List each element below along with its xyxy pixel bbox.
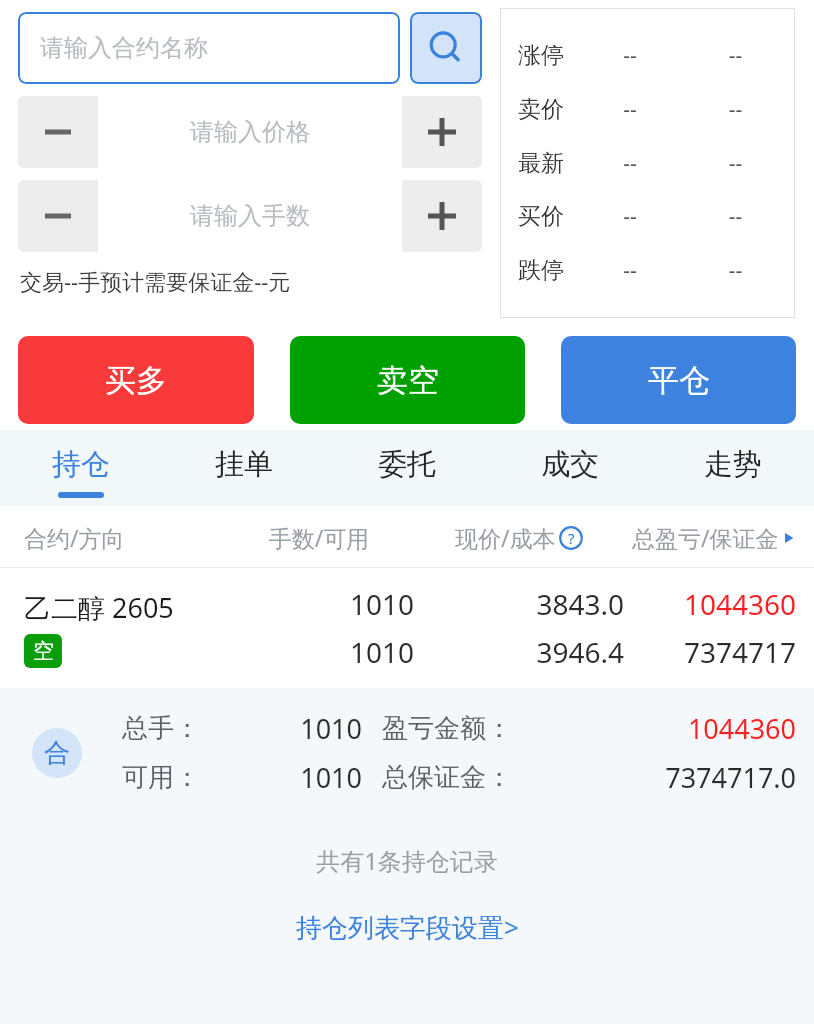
button[interactable]: 请输入手数 <box>98 180 402 252</box>
staticText: -- <box>584 149 676 178</box>
staticText: 7374717.0 <box>512 759 796 796</box>
staticText: 可用： <box>122 761 232 794</box>
staticText: -- <box>676 95 795 124</box>
staticText: 挂单 <box>215 446 273 483</box>
staticText: 买价 <box>518 202 584 231</box>
button[interactable]: 请输入合约名称 <box>18 12 400 84</box>
staticText: 委托 <box>378 446 436 483</box>
button[interactable]: 持仓列表字段设置> <box>276 903 539 951</box>
staticText: -- <box>584 95 676 124</box>
staticText: -- <box>584 256 676 285</box>
button[interactable]: 挂单 <box>162 430 325 506</box>
staticText: 持仓列表字段设置> <box>296 909 519 945</box>
staticText: 平仓 <box>648 361 710 400</box>
button[interactable]: 卖价 <box>500 95 795 124</box>
button[interactable]: 涨停 <box>500 41 795 70</box>
staticText: 盈亏金额： <box>382 712 512 745</box>
staticText: -- <box>676 256 795 285</box>
staticText: 跌停 <box>518 256 584 285</box>
staticText: 空 <box>33 638 54 664</box>
staticText: 1010 <box>232 759 362 796</box>
staticText: 买多 <box>105 361 167 400</box>
staticText: 7374717 <box>624 633 796 671</box>
staticText: -- <box>584 41 676 70</box>
staticText: 请输入合约名称 <box>40 33 208 63</box>
staticText: 卖价 <box>518 95 584 124</box>
staticText: 最新 <box>518 149 584 178</box>
button[interactable]: Help <box>559 526 583 550</box>
staticText: 1010 <box>224 633 414 671</box>
staticText: 涨停 <box>518 41 584 70</box>
staticText: 总盈亏/保证金 <box>632 522 779 553</box>
staticText: 请输入价格 <box>190 117 310 147</box>
staticText: -- <box>676 149 795 178</box>
button[interactable]: Decrease <box>18 96 98 168</box>
staticText: -- <box>676 41 795 70</box>
staticText: 1010 <box>224 585 414 623</box>
staticText: 总手： <box>122 712 232 745</box>
staticText: 现价/成本 <box>455 522 556 553</box>
staticText: 1010 <box>232 710 362 747</box>
staticText: 共有1条持仓记录 <box>0 844 814 877</box>
staticText: 1044360 <box>624 585 796 623</box>
button[interactable]: 卖空 <box>290 336 525 424</box>
staticText: 走势 <box>704 446 762 483</box>
button[interactable]: 委托 <box>325 430 488 506</box>
button[interactable]: 跌停 <box>500 256 795 285</box>
staticText: ? <box>568 528 575 548</box>
button[interactable]: 买价 <box>500 202 795 231</box>
staticText: 3843.0 <box>414 585 624 623</box>
button[interactable]: 合 <box>0 688 814 818</box>
button[interactable]: 请输入价格 <box>98 96 402 168</box>
staticText: 总保证金： <box>382 761 512 794</box>
button[interactable]: 持仓 <box>0 430 162 506</box>
staticText: 卖空 <box>377 361 439 400</box>
staticText: 合约/方向 <box>24 522 224 553</box>
staticText: 乙二醇 2605 <box>24 589 174 626</box>
button[interactable]: Decrease <box>18 180 98 252</box>
button[interactable]: Increase <box>402 180 482 252</box>
staticText: 成交 <box>541 446 599 483</box>
staticText: -- <box>676 202 795 231</box>
button[interactable]: 最新 <box>500 149 795 178</box>
button[interactable]: 平仓 <box>561 336 796 424</box>
button[interactable]: 买多 <box>18 336 254 424</box>
staticText: 3946.4 <box>414 633 624 671</box>
button[interactable]: 乙二醇 2605 <box>0 568 814 688</box>
staticText: 请输入手数 <box>190 201 310 231</box>
button[interactable]: Search <box>410 12 482 84</box>
button[interactable]: 成交 <box>488 430 651 506</box>
button[interactable]: Increase <box>402 96 482 168</box>
staticText: 1044360 <box>512 710 796 747</box>
staticText: 手数/可用 <box>224 522 414 553</box>
staticText: -- <box>584 202 676 231</box>
button[interactable]: 走势 <box>651 430 814 506</box>
staticText: 合 <box>44 737 70 770</box>
staticText: 交易--手预计需要保证金--元 <box>20 266 291 296</box>
staticText: 持仓 <box>52 446 110 483</box>
